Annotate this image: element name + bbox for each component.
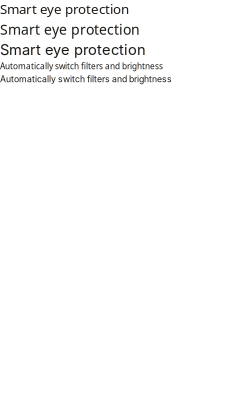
staticText: Smart eye protection — [0, 20, 140, 39]
staticText: Automatically switch filters and brightn… — [0, 60, 163, 72]
staticText: Automatically switch filters and brightn… — [0, 74, 172, 84]
staticText: Smart eye protection — [0, 0, 129, 18]
staticText: Smart eye protection — [0, 41, 146, 58]
